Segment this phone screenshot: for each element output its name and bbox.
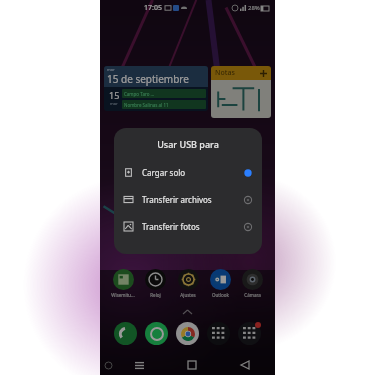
staticText: mar	[110, 101, 118, 106]
button[interactable]: Phone	[114, 322, 137, 345]
staticText: Transferir archivos	[142, 194, 212, 205]
button[interactable]: Home	[181, 355, 203, 375]
staticText: Ajustes	[180, 292, 196, 298]
button[interactable]: WhatsApp	[145, 322, 168, 345]
staticText: Usar USB para	[114, 138, 262, 150]
staticText: 15	[109, 89, 120, 101]
staticText: Wisemitu...	[111, 292, 135, 298]
staticText: mar	[107, 67, 115, 72]
staticText: Campo Taro ...	[124, 91, 155, 97]
button[interactable]: Chrome	[176, 322, 199, 345]
button[interactable]: Cámara	[237, 269, 267, 298]
staticText: Reloj	[150, 292, 161, 298]
staticText: Cámara	[244, 292, 261, 298]
staticText: Nombre Salinas al 11	[124, 102, 169, 108]
button[interactable]: Notas	[211, 66, 271, 118]
button[interactable]: Transferir archivos	[114, 186, 262, 213]
staticText: Outlook	[212, 292, 229, 298]
button[interactable]: Back	[234, 355, 256, 375]
staticText: 17:05	[144, 3, 162, 13]
button[interactable]: Ajustes	[173, 269, 203, 298]
button[interactable]: Cargar solo	[114, 159, 262, 186]
staticText: Transferir fotos	[142, 221, 200, 232]
staticText: Notas	[215, 68, 235, 78]
button[interactable]: Calculator	[238, 322, 261, 345]
button[interactable]: Wisemitu...	[108, 269, 138, 298]
button[interactable]: Recents	[128, 355, 150, 375]
staticText: Cargar solo	[142, 167, 186, 178]
button[interactable]: Reloj	[140, 269, 170, 298]
button[interactable]: Transferir fotos	[114, 213, 262, 240]
button[interactable]: mar	[104, 66, 208, 111]
button[interactable]: Keyboard	[207, 322, 230, 345]
staticText: 28%	[248, 4, 260, 12]
staticText: 15 de septiembre	[107, 72, 189, 86]
button[interactable]: Outlook	[205, 269, 235, 298]
